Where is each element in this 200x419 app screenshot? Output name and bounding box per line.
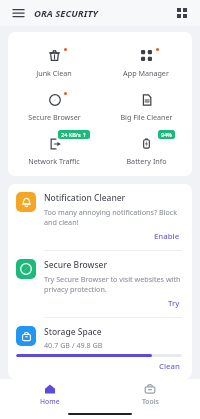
staticText: Too many annoying notifications? Block a… xyxy=(44,207,182,227)
staticText: Try xyxy=(168,298,180,309)
staticText: Battery Info xyxy=(126,156,167,166)
staticText: Secure Browser xyxy=(28,112,81,122)
button[interactable]: Try xyxy=(166,297,182,310)
staticText: Junk Clean xyxy=(36,68,72,78)
staticText: Storage Space xyxy=(44,326,102,338)
staticText: ORA SECURITY xyxy=(34,7,98,20)
button[interactable]: 24 KB/s ↑ xyxy=(8,130,100,168)
staticText: Secure Browser xyxy=(44,259,108,271)
button[interactable]: Home xyxy=(0,379,100,409)
button[interactable]: Storage Space xyxy=(8,318,192,379)
button[interactable]: Tools xyxy=(100,379,200,409)
staticText: Home xyxy=(40,397,60,406)
staticText: Tools xyxy=(142,397,159,406)
button[interactable]: Menu xyxy=(9,4,27,22)
button[interactable]: Enable xyxy=(152,230,182,243)
button[interactable]: Clean xyxy=(157,360,182,373)
staticText: Enable xyxy=(154,231,180,242)
button[interactable]: Secure Browser xyxy=(8,86,100,124)
staticText: 24 KB/s ↑ xyxy=(61,131,87,138)
button[interactable]: Notification Cleaner xyxy=(8,184,192,250)
button[interactable]: Apps xyxy=(173,4,191,22)
button[interactable]: App Manager xyxy=(100,42,192,80)
staticText: Network Traffic xyxy=(28,156,80,166)
button[interactable]: Big File Cleaner xyxy=(100,86,192,124)
staticText: Big File Cleaner xyxy=(120,112,173,122)
staticText: App Manager xyxy=(123,68,169,78)
staticText: Try Secure Browser to visit websites wit… xyxy=(44,274,182,294)
button[interactable]: 94% xyxy=(100,130,192,168)
button[interactable]: Junk Clean xyxy=(8,42,100,80)
staticText: 40.7 GB / 49.8 GB xyxy=(44,340,103,350)
staticText: Notification Cleaner xyxy=(44,192,126,204)
staticText: Clean xyxy=(159,361,180,372)
staticText: 94% xyxy=(161,131,172,138)
button[interactable]: Secure Browser xyxy=(8,251,192,317)
